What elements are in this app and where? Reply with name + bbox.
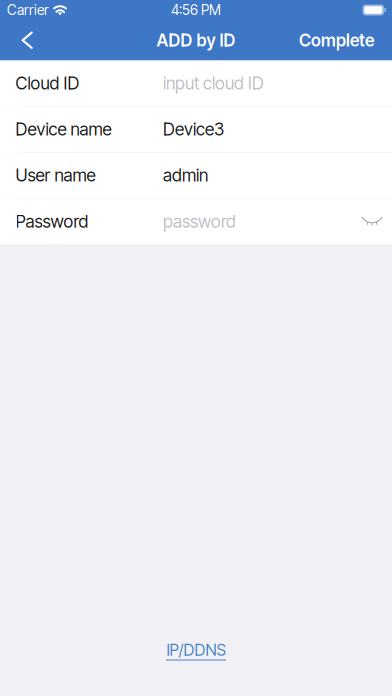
staticText: Password <box>15 211 88 232</box>
staticText: admin <box>163 165 208 186</box>
button[interactable]: Back <box>0 20 47 60</box>
staticText: 4:56 PM <box>171 1 221 18</box>
button[interactable]: Cloud ID <box>0 60 392 106</box>
staticText: Cloud ID <box>15 73 79 94</box>
staticText: password <box>163 211 236 232</box>
staticText: Carrier <box>7 1 49 18</box>
staticText: Device name <box>15 119 111 140</box>
staticText: IP/DDNS <box>166 640 225 659</box>
button[interactable]: Password <box>0 198 392 244</box>
staticText: User name <box>15 165 95 186</box>
button[interactable]: Device name <box>0 106 392 152</box>
button[interactable]: User name <box>0 152 392 198</box>
staticText: input cloud ID <box>163 73 264 94</box>
staticText: ADD by ID <box>156 30 235 50</box>
staticText: Device3 <box>163 119 224 140</box>
button[interactable]: IP/DDNS <box>156 634 236 666</box>
button[interactable]: Complete <box>285 20 392 60</box>
staticText: Complete <box>299 30 374 50</box>
